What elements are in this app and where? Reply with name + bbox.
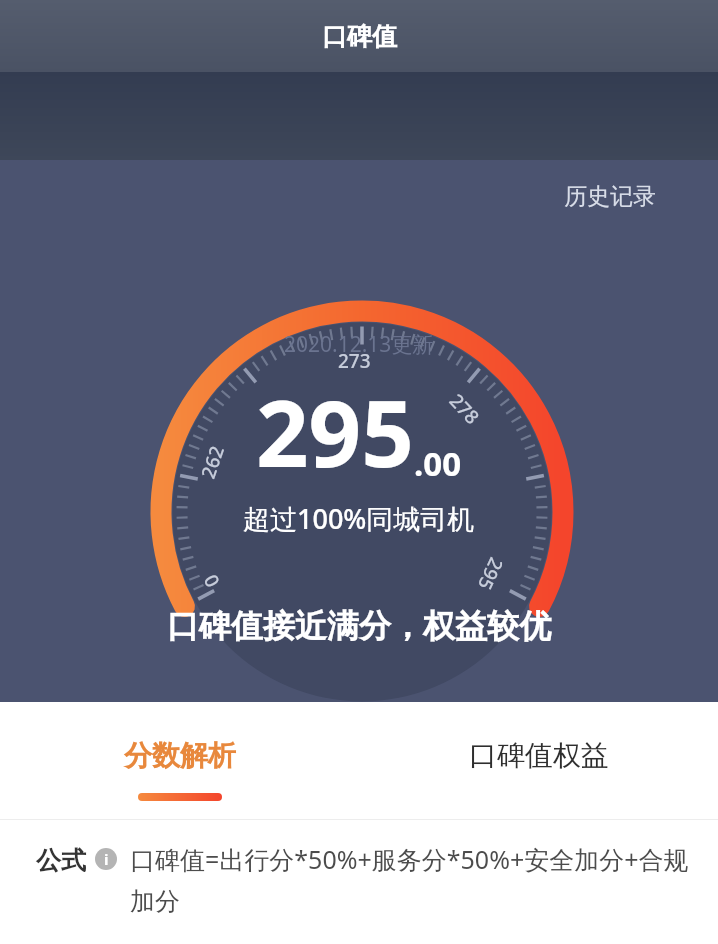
staticText: 295 [472, 554, 509, 594]
staticText: 历史记录 [564, 182, 656, 211]
staticText: .00 [414, 441, 462, 486]
button[interactable]: 分数解析 [0, 702, 359, 820]
staticText: 295 [256, 369, 414, 494]
staticText: 262 [195, 442, 230, 482]
button[interactable]: 公式说明 [95, 848, 117, 870]
staticText: 公式 [36, 845, 86, 876]
button[interactable]: 口碑值权益 [359, 702, 718, 820]
staticText: 口碑值接近满分，权益较优 [167, 606, 551, 646]
staticText: 超过100%同城司机 [243, 500, 475, 537]
staticText: 口碑值 [322, 21, 397, 52]
button[interactable]: 历史记录 [558, 176, 662, 217]
staticText: 口碑值权益 [469, 738, 609, 773]
staticText: 分数解析 [124, 738, 236, 773]
staticText: 0 [197, 570, 225, 592]
staticText: 278 [444, 388, 485, 430]
staticText: 口碑值=出行分*50%+服务分*50%+安全加分+合规加分 [130, 842, 690, 918]
staticText: 273 [338, 348, 371, 374]
staticText: 2020.12.13更新 [284, 330, 434, 359]
staticText: i [104, 849, 109, 869]
